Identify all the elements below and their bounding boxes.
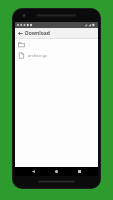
button[interactable]: ..	[15, 39, 98, 50]
button[interactable]: Back	[29, 167, 38, 176]
staticText: ..	[28, 42, 31, 47]
button[interactable]: Home	[52, 167, 61, 176]
button[interactable]: Back	[15, 28, 25, 38]
staticText: archive.gz	[28, 53, 47, 58]
button[interactable]: Recent apps	[75, 167, 84, 176]
staticText: Download	[25, 30, 50, 37]
button[interactable]: archive.gz	[15, 50, 98, 61]
